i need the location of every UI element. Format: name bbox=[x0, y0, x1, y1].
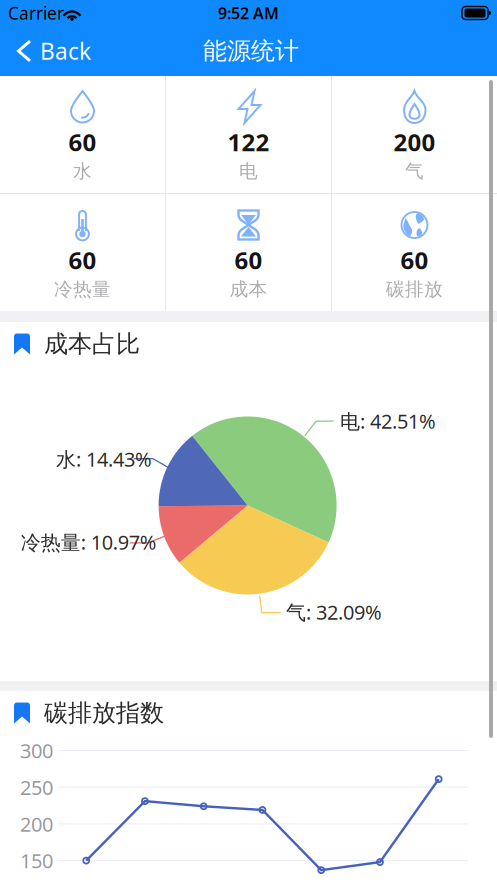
staticText: 60 bbox=[68, 244, 96, 276]
staticText: 9:52 AM bbox=[218, 2, 279, 24]
staticText: 60 bbox=[400, 244, 428, 276]
staticText: 200 bbox=[393, 126, 435, 158]
staticText: 122 bbox=[227, 126, 269, 158]
button[interactable]: 122 bbox=[166, 76, 331, 193]
staticText: Back bbox=[40, 36, 91, 66]
staticText: 200 bbox=[20, 811, 53, 837]
staticText: 250 bbox=[20, 774, 53, 800]
staticText: 冷热量: 10.97% bbox=[21, 529, 157, 555]
button[interactable]: 60 bbox=[0, 76, 165, 193]
staticText: 能源统计 bbox=[203, 36, 299, 66]
staticText: 电 bbox=[239, 160, 258, 183]
staticText: 60 bbox=[234, 244, 262, 276]
staticText: 成本占比 bbox=[44, 329, 140, 359]
staticText: 水: 14.43% bbox=[56, 446, 152, 472]
staticText: 成本 bbox=[229, 278, 267, 301]
staticText: 气 bbox=[405, 160, 424, 183]
staticText: Carrier bbox=[8, 1, 64, 24]
staticText: 水 bbox=[73, 160, 92, 183]
button[interactable]: 60 bbox=[0, 194, 165, 311]
staticText: 冷热量 bbox=[54, 278, 111, 301]
staticText: 气: 32.09% bbox=[286, 599, 382, 625]
staticText: 碳排放 bbox=[386, 278, 443, 301]
button[interactable]: Back bbox=[0, 26, 103, 76]
button[interactable]: 200 bbox=[332, 76, 497, 193]
button[interactable]: 60 bbox=[332, 194, 497, 311]
staticText: 150 bbox=[20, 847, 53, 874]
staticText: 60 bbox=[68, 126, 96, 158]
button[interactable]: 60 bbox=[166, 194, 331, 311]
staticText: 电: 42.51% bbox=[340, 408, 436, 434]
staticText: 碳排放指数 bbox=[44, 698, 164, 728]
staticText: 300 bbox=[20, 737, 53, 764]
